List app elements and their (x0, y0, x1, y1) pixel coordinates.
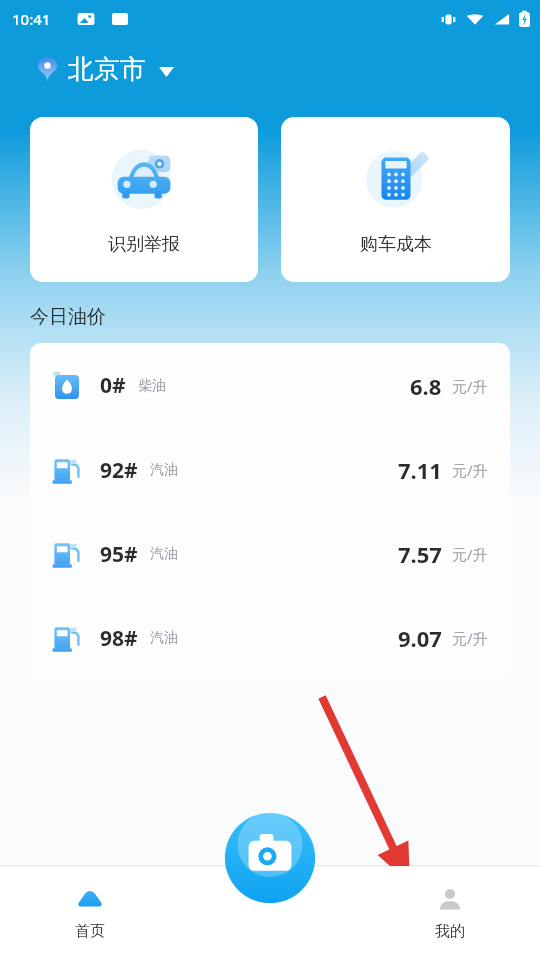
staticText: 9.07 (398, 623, 442, 653)
staticText: 元/升 (452, 628, 488, 648)
staticText: 识别举报 (108, 233, 180, 256)
button[interactable]: Camera (222, 810, 318, 906)
button[interactable]: 购车成本 (281, 117, 510, 282)
staticText: 10:41 (12, 9, 51, 29)
staticText: 92# (100, 456, 138, 485)
staticText: 98# (100, 624, 138, 653)
staticText: 7.11 (398, 455, 442, 485)
staticText: 元/升 (452, 460, 488, 480)
staticText: 7.57 (398, 539, 442, 569)
staticText: 6.8 (410, 371, 442, 401)
staticText: 汽油 (150, 461, 178, 479)
button[interactable]: 98# (30, 596, 510, 680)
button[interactable]: 我的 (360, 866, 540, 960)
staticText: 汽油 (150, 545, 178, 563)
button[interactable]: 92# (30, 428, 510, 512)
staticText: 元/升 (452, 544, 488, 564)
staticText: 今日油价 (30, 305, 106, 329)
button[interactable]: 0# (30, 343, 510, 428)
staticText: 95# (100, 540, 138, 569)
staticText: 元/升 (452, 376, 488, 396)
button[interactable]: 首页 (0, 866, 180, 960)
staticText: 我的 (435, 922, 465, 941)
staticText: 购车成本 (360, 233, 432, 256)
button[interactable]: 95# (30, 512, 510, 596)
staticText: 汽油 (150, 629, 178, 647)
staticText: 首页 (75, 922, 105, 941)
button[interactable]: 识别举报 (30, 117, 258, 282)
staticText: 柴油 (138, 377, 166, 395)
button[interactable]: 北京市 (0, 38, 540, 100)
staticText: 0# (100, 371, 126, 400)
staticText: 北京市 (68, 53, 146, 86)
